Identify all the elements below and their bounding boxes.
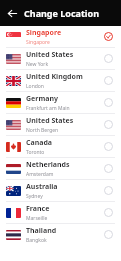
staticText: Singapore xyxy=(26,39,50,46)
button[interactable]: Canada xyxy=(0,136,121,157)
button[interactable]: Back xyxy=(4,5,20,21)
staticText: Singapore xyxy=(26,28,62,38)
staticText: Frankfurt am Main xyxy=(26,105,70,112)
staticText: Australia xyxy=(26,182,58,192)
staticText: United Kingdom xyxy=(26,72,83,82)
button[interactable]: United Kingdom xyxy=(0,70,121,91)
staticText: Amsterdam xyxy=(26,171,54,178)
button[interactable]: United States xyxy=(0,114,121,135)
staticText: Canada xyxy=(26,138,53,148)
staticText: Toronto xyxy=(26,149,45,156)
staticText: Marseille xyxy=(26,215,48,222)
button[interactable]: Singapore xyxy=(0,26,121,47)
staticText: Thailand xyxy=(26,226,57,236)
staticText: London xyxy=(26,83,44,90)
staticText: Germany xyxy=(26,94,58,104)
button[interactable]: Australia xyxy=(0,180,121,201)
staticText: Change Location xyxy=(24,7,100,19)
staticText: United States xyxy=(26,116,74,126)
staticText: France xyxy=(26,204,50,214)
button[interactable]: United States xyxy=(0,48,121,69)
staticText: North Bergen xyxy=(26,127,59,134)
staticText: Netherlands xyxy=(26,160,70,170)
staticText: New York xyxy=(26,61,49,68)
staticText: United States xyxy=(26,50,74,60)
button[interactable]: France xyxy=(0,202,121,223)
staticText: Sydney xyxy=(26,193,43,200)
button[interactable]: Thailand xyxy=(0,224,121,245)
button[interactable]: Germany xyxy=(0,92,121,113)
button[interactable]: Netherlands xyxy=(0,158,121,179)
staticText: Bangkok xyxy=(26,237,47,244)
